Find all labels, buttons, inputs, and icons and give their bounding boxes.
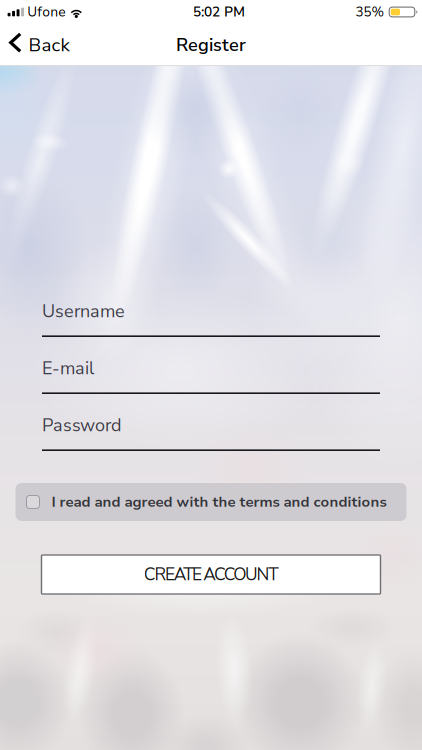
button[interactable]: Back — [0, 24, 81, 65]
button[interactable]: I read and agreed with the terms and con… — [15, 483, 406, 521]
staticText: CREATE ACCOUNT — [144, 563, 278, 586]
staticText: Password — [42, 413, 121, 438]
staticText: Ufone — [27, 3, 65, 21]
staticText: E-mail — [42, 356, 94, 381]
staticText: 5:02 PM — [193, 3, 245, 21]
button[interactable]: CREATE ACCOUNT — [41, 555, 380, 594]
staticText: Username — [42, 299, 125, 324]
staticText: I read and agreed with the terms and con… — [51, 492, 386, 512]
staticText: 35% — [355, 3, 384, 21]
staticText: Back — [28, 32, 69, 58]
staticText: Register — [176, 33, 246, 57]
